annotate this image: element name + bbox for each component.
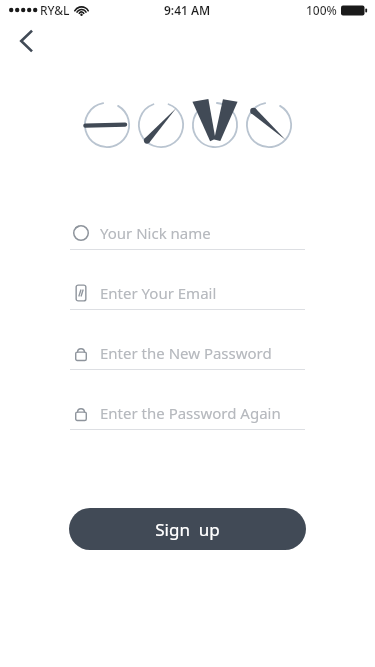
button[interactable]: Style option 1 — [81, 99, 133, 151]
staticText: Enter the New Password — [100, 343, 272, 363]
button[interactable]: Sign up — [69, 508, 306, 550]
staticText: Enter the Password Again — [100, 403, 281, 423]
button[interactable]: Back — [10, 24, 44, 58]
button[interactable]: Style option 2 — [135, 99, 187, 151]
button[interactable]: Enter Your Email — [70, 278, 305, 338]
button[interactable]: Enter the Password Again — [70, 398, 305, 458]
button[interactable]: Style option 4 — [243, 99, 295, 151]
staticText: RY&L — [40, 2, 70, 18]
staticText: Sign up — [155, 518, 220, 541]
staticText: Enter Your Email — [100, 283, 217, 303]
button[interactable]: Style option 3 — [189, 99, 241, 151]
staticText: 100% — [306, 2, 337, 18]
button[interactable]: Enter the New Password — [70, 338, 305, 398]
button[interactable]: Your Nick name — [70, 218, 305, 278]
staticText: 9:41 AM — [164, 2, 211, 18]
staticText: Your Nick name — [100, 223, 211, 243]
